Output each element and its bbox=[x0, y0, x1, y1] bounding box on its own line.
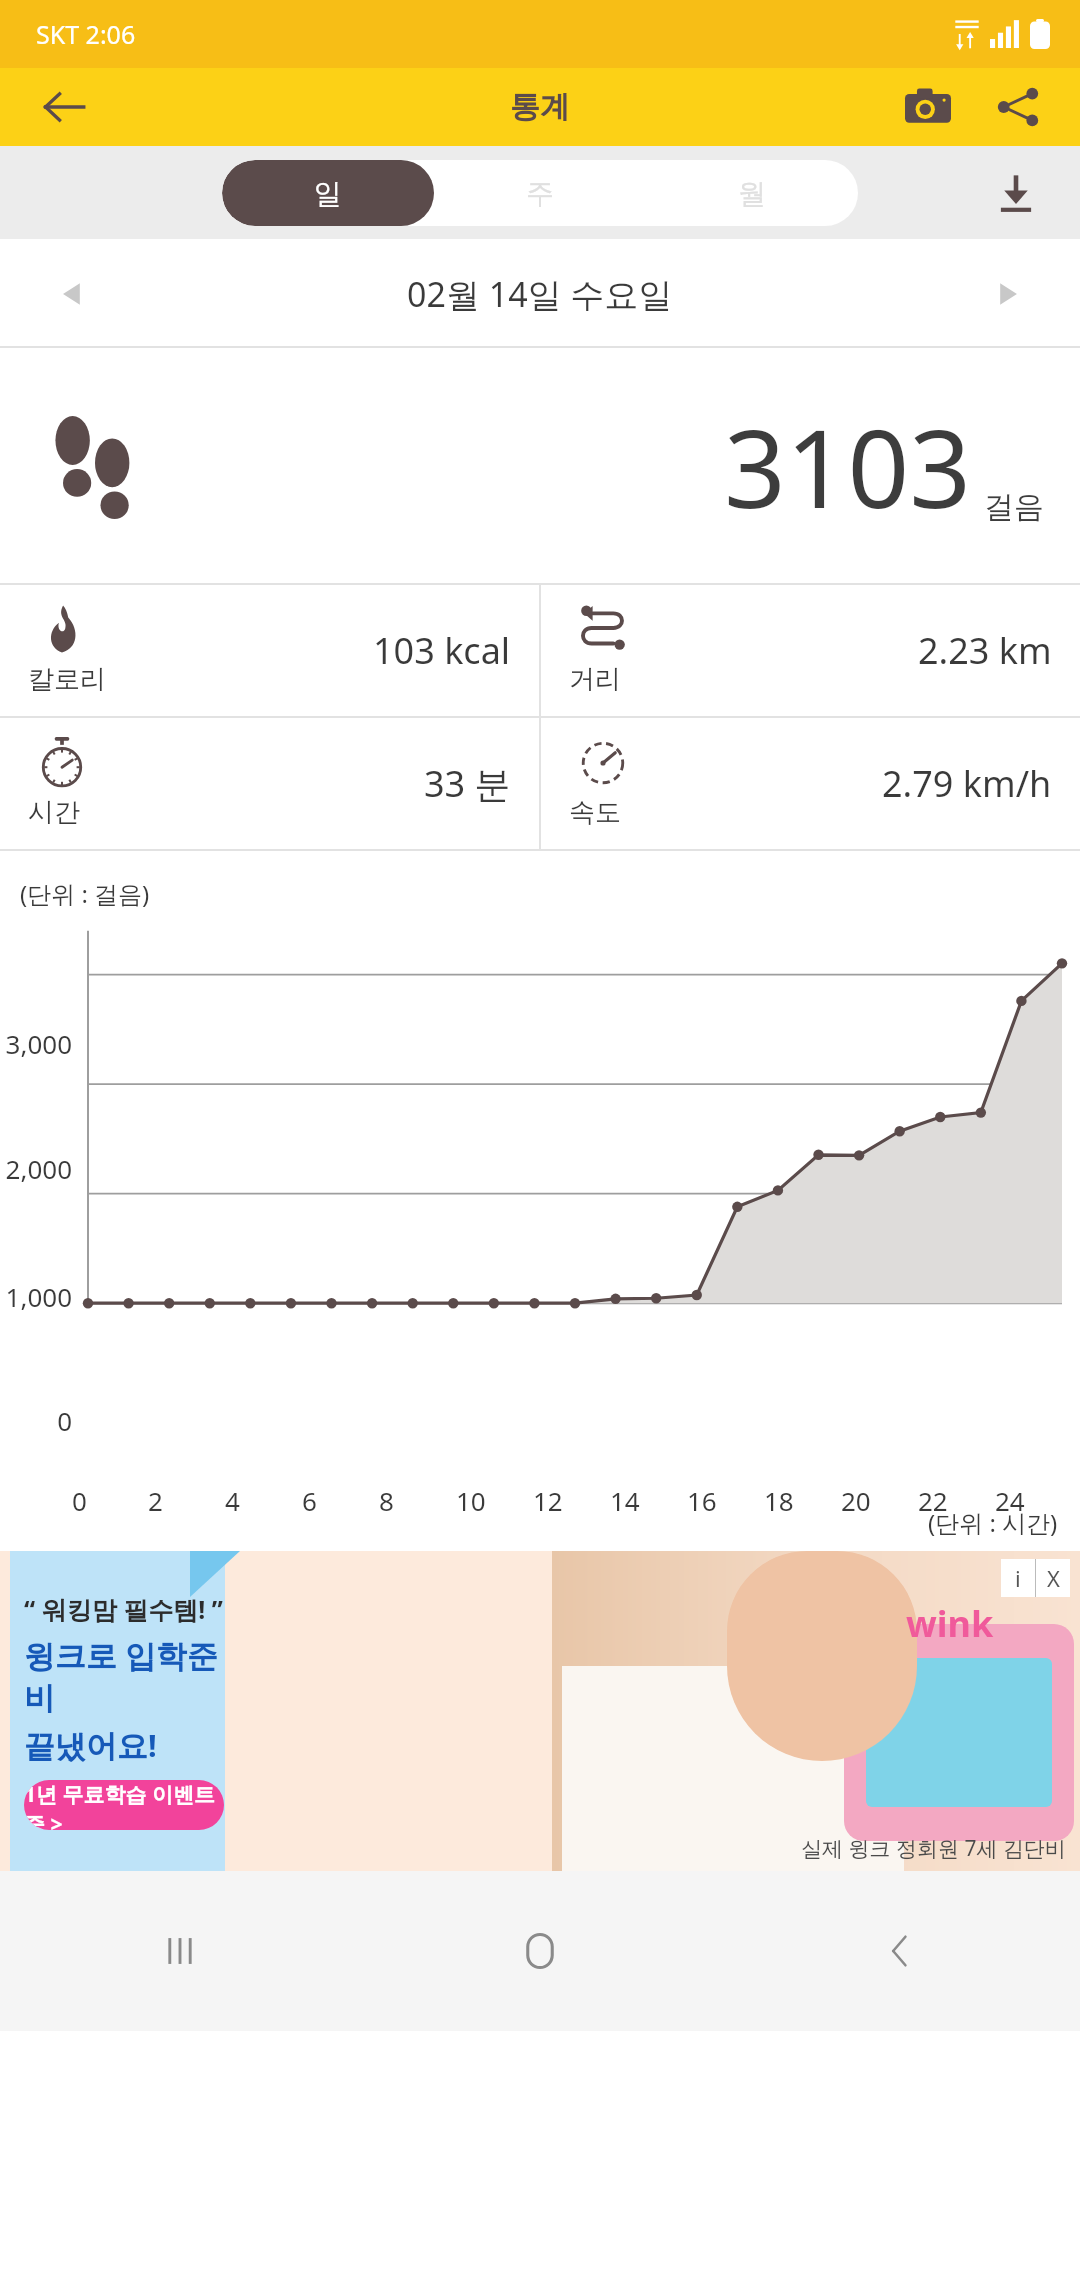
staticText: 걸음 bbox=[984, 488, 1044, 526]
staticText: 4 bbox=[225, 1483, 240, 1518]
staticText: 3103 bbox=[724, 393, 972, 540]
button[interactable]: 실제 윙크 정회원 7세 김단비 bbox=[0, 1551, 1080, 1871]
staticText: 12 bbox=[533, 1483, 563, 1518]
staticText: 0 bbox=[0, 1403, 72, 1438]
staticText: “ 워킹맘 필수템! ” bbox=[24, 1592, 223, 1626]
button[interactable]: Back bbox=[720, 1871, 1080, 2031]
staticText: 24 bbox=[995, 1483, 1025, 1518]
staticText: 22 bbox=[918, 1483, 948, 1518]
staticText: SKT 2:06 bbox=[36, 17, 136, 51]
button[interactable]: 거리 bbox=[541, 585, 1080, 716]
staticText: (단위 : 시간) bbox=[928, 1506, 1058, 1539]
button[interactable]: 속도 bbox=[541, 718, 1080, 849]
staticText: 윙크로 입학준비 bbox=[24, 1634, 224, 1718]
staticText: 월 bbox=[738, 176, 766, 211]
button[interactable]: Previous day bbox=[36, 258, 108, 330]
button[interactable]: Share bbox=[982, 71, 1054, 143]
staticText: 33 분 bbox=[424, 759, 511, 808]
staticText: 10 bbox=[456, 1483, 486, 1518]
staticText: 끝냈어요! bbox=[24, 1724, 157, 1766]
staticText: 2.23 km bbox=[918, 626, 1052, 675]
staticText: 1년 무료학습 이벤트 중 > bbox=[24, 1780, 224, 1830]
staticText: 3,000 bbox=[0, 1026, 72, 1061]
staticText: (단위 : 걸음) bbox=[20, 877, 150, 910]
staticText: 0 bbox=[72, 1483, 87, 1518]
button[interactable]: 월 bbox=[646, 160, 858, 226]
staticText: 거리 bbox=[569, 663, 621, 696]
button[interactable]: 시간 bbox=[0, 718, 539, 849]
staticText: 14 bbox=[610, 1483, 640, 1518]
staticText: 속도 bbox=[569, 796, 621, 829]
button[interactable]: Close ad bbox=[1036, 1559, 1070, 1597]
staticText: 20 bbox=[841, 1483, 871, 1518]
staticText: 103 kcal bbox=[373, 626, 511, 675]
button[interactable]: Ad info bbox=[1001, 1559, 1035, 1597]
button[interactable]: 주 bbox=[434, 160, 646, 226]
staticText: i bbox=[1015, 1563, 1021, 1593]
staticText: 2.79 km/h bbox=[882, 759, 1052, 808]
button[interactable]: 1년 무료학습 이벤트 중 > bbox=[24, 1780, 224, 1830]
staticText: wink bbox=[906, 1599, 994, 1648]
button[interactable]: Download bbox=[980, 157, 1052, 229]
staticText: 6 bbox=[302, 1483, 317, 1518]
staticText: 통계 bbox=[510, 88, 570, 126]
button[interactable]: Back bbox=[28, 71, 100, 143]
staticText: 8 bbox=[379, 1483, 394, 1518]
button[interactable]: Next day bbox=[972, 258, 1044, 330]
button[interactable]: 칼로리 bbox=[0, 585, 539, 716]
staticText: X bbox=[1047, 1563, 1060, 1593]
button[interactable]: Recents bbox=[0, 1871, 360, 2031]
staticText: 02월 14일 수요일 bbox=[407, 271, 673, 317]
staticText: 2 bbox=[148, 1483, 163, 1518]
button[interactable]: 일 bbox=[222, 160, 434, 226]
staticText: 칼로리 bbox=[28, 663, 106, 696]
staticText: 일 bbox=[314, 176, 342, 211]
staticText: 1,000 bbox=[0, 1279, 72, 1314]
staticText: 18 bbox=[764, 1483, 794, 1518]
staticText: 시간 bbox=[28, 796, 80, 829]
staticText: 2,000 bbox=[0, 1151, 72, 1186]
button[interactable]: Camera bbox=[892, 71, 964, 143]
button[interactable]: Home bbox=[360, 1871, 720, 2031]
staticText: 실제 윙크 정회원 7세 김단비 bbox=[801, 1834, 1066, 1863]
staticText: 16 bbox=[687, 1483, 717, 1518]
staticText: 주 bbox=[526, 176, 554, 211]
